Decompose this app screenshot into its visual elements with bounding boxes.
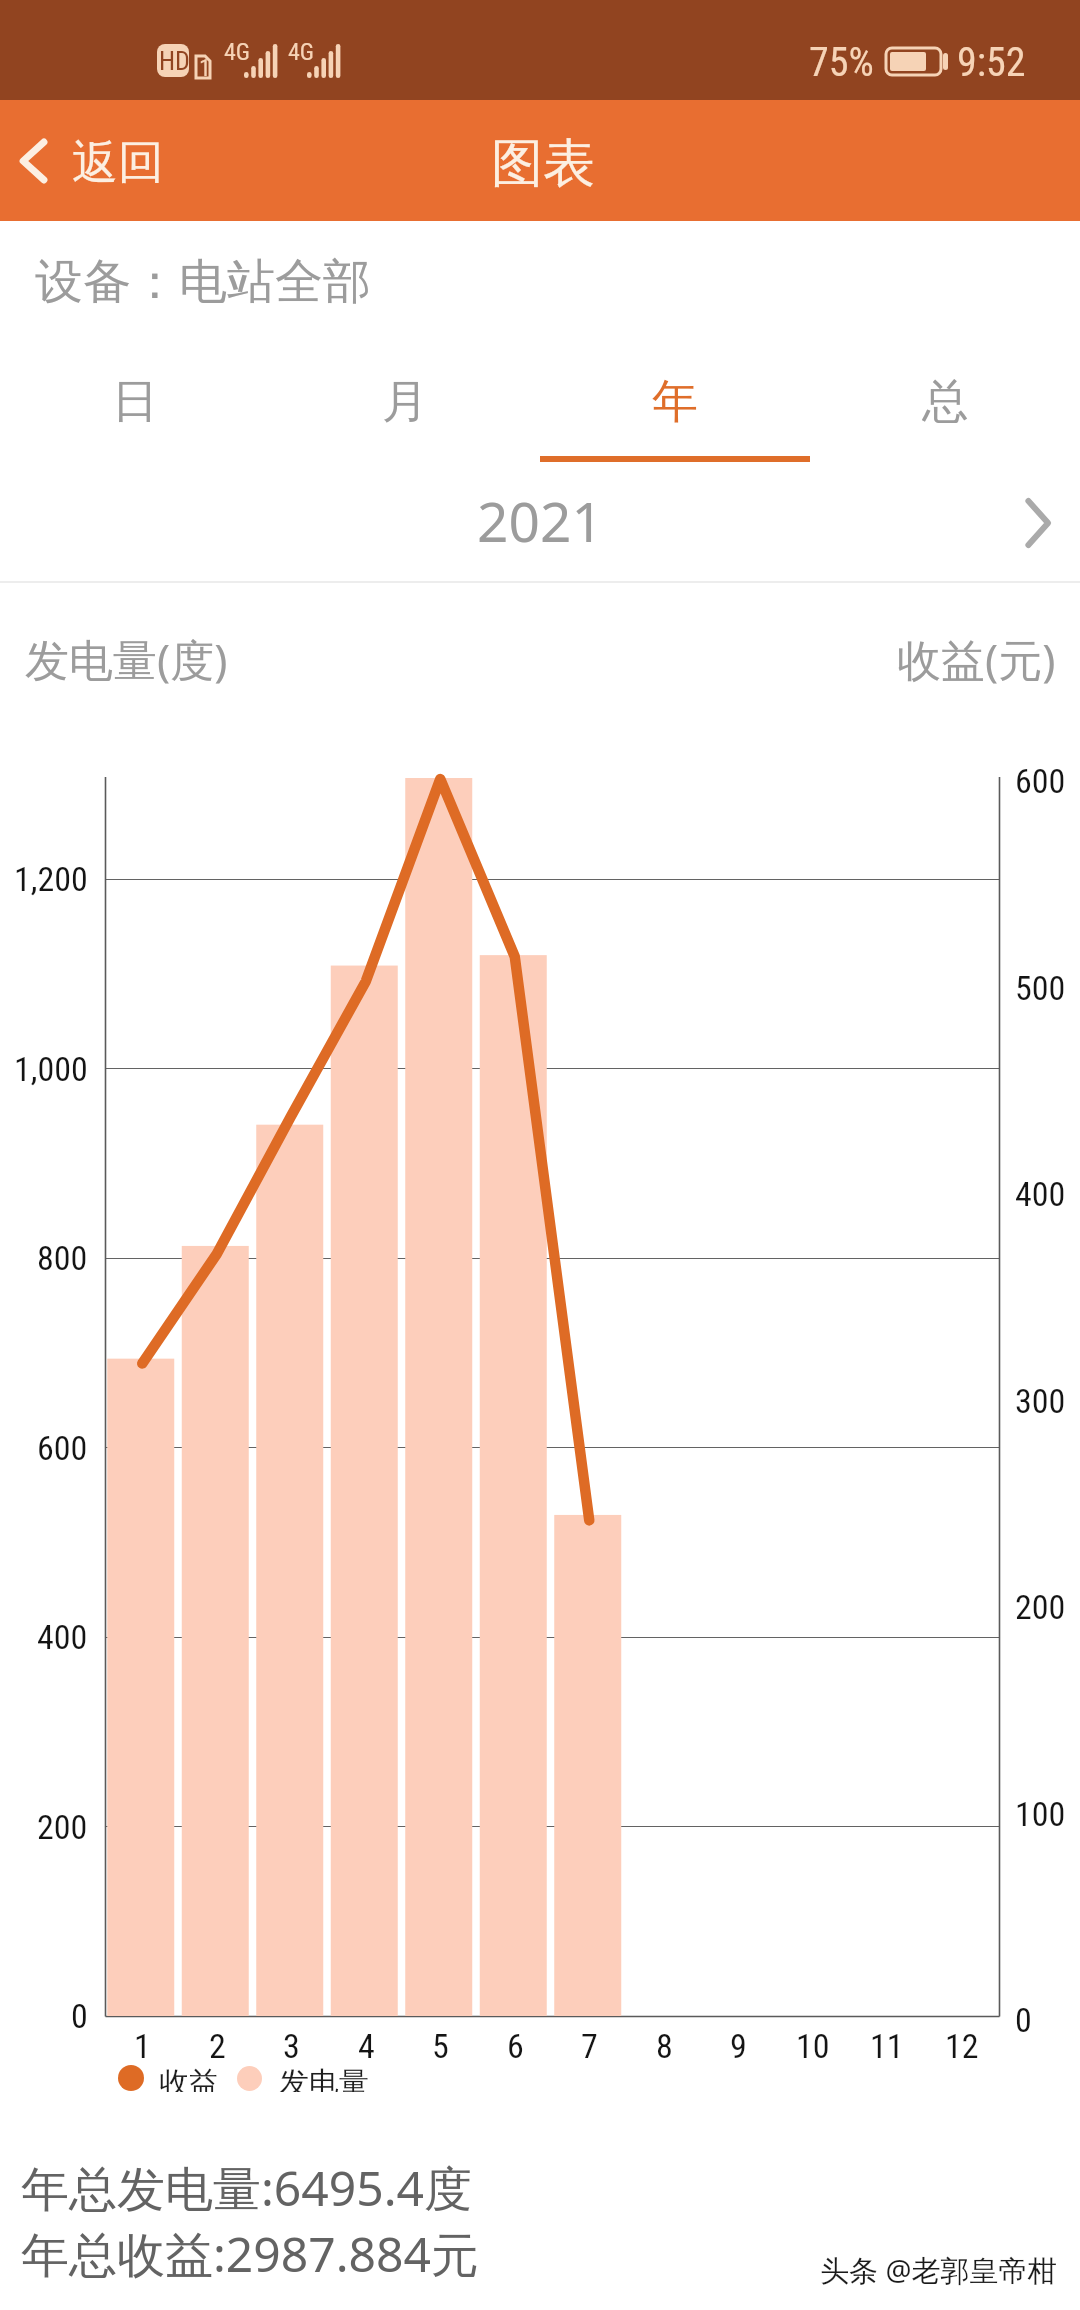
staticText: 100 <box>1015 1794 1066 1834</box>
staticText: 8 <box>656 2026 673 2066</box>
staticText: 400 <box>1015 1174 1066 1214</box>
staticText: 4G <box>288 38 315 66</box>
button[interactable]: 设备：电站全部 <box>0 222 1080 345</box>
staticText: 图表 <box>491 131 595 197</box>
staticText: 0 <box>71 1996 88 2036</box>
staticText: 600 <box>37 1428 88 1468</box>
staticText: 日 <box>112 373 158 431</box>
staticText: 2 <box>209 2026 226 2066</box>
staticText: 200 <box>37 1807 88 1847</box>
staticText: 4 <box>358 2026 375 2066</box>
button[interactable]: 返回 <box>0 100 188 221</box>
staticText: 发电量(度) <box>25 629 228 689</box>
staticText: 7 <box>581 2026 598 2066</box>
staticText: 头条 @老郭皇帝柑 <box>820 2250 1057 2290</box>
button[interactable]: Next year <box>1002 479 1080 567</box>
staticText: 500 <box>1015 968 1066 1008</box>
staticText: 3 <box>283 2026 300 2066</box>
staticText: 12 <box>945 2026 979 2066</box>
button[interactable]: Total <box>810 345 1080 470</box>
staticText: 2021 <box>477 483 603 558</box>
staticText: 收益(元) <box>897 629 1056 689</box>
staticText: 收益 <box>159 2064 219 2092</box>
staticText: 月 <box>382 373 428 431</box>
staticText: 1 <box>134 2026 151 2066</box>
staticText: 11 <box>870 2026 904 2066</box>
staticText: 发电量 <box>279 2064 369 2092</box>
staticText: 800 <box>37 1238 88 1278</box>
staticText: 年总收益:2987.884元 <box>21 2221 479 2287</box>
staticText: 300 <box>1015 1381 1066 1421</box>
staticText: 75% <box>809 39 874 86</box>
staticText: 返回 <box>72 134 164 192</box>
staticText: HD <box>159 46 190 76</box>
staticText: 4G <box>224 38 251 66</box>
staticText: 10 <box>796 2026 830 2066</box>
staticText: 400 <box>37 1617 88 1657</box>
staticText: 1,000 <box>14 1049 88 1089</box>
staticText: 6 <box>507 2026 524 2066</box>
staticText: 总 <box>922 373 968 431</box>
button[interactable]: 2021 <box>437 471 643 574</box>
staticText: 1 <box>199 54 211 82</box>
button[interactable]: Day <box>0 345 270 470</box>
staticText: 1,200 <box>14 859 88 899</box>
staticText: 设备：电站全部 <box>35 252 371 312</box>
staticText: 600 <box>1015 761 1066 801</box>
staticText: 9:52 <box>957 39 1026 86</box>
staticText: 5 <box>432 2026 449 2066</box>
staticText: 年总发电量:6495.4度 <box>21 2155 473 2221</box>
staticText: 年 <box>652 373 698 431</box>
staticText: 200 <box>1015 1587 1066 1627</box>
button[interactable]: Year <box>540 345 810 470</box>
staticText: 9 <box>730 2026 747 2066</box>
button[interactable]: Month <box>270 345 540 470</box>
staticText: 0 <box>1015 2000 1032 2040</box>
